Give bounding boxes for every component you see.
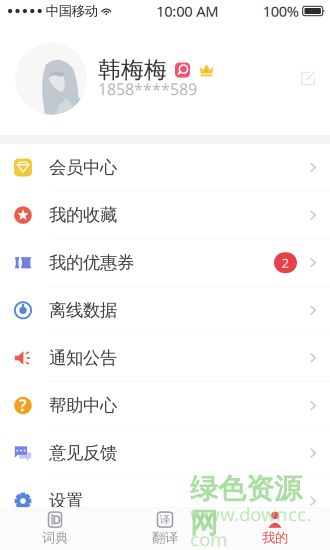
button[interactable]: 我的优惠券 xyxy=(0,239,330,287)
button[interactable]: 译 xyxy=(110,507,220,550)
button[interactable]: ? xyxy=(0,382,330,430)
button[interactable]: D xyxy=(0,507,110,550)
staticText: 1858****589 xyxy=(98,78,197,100)
button[interactable]: Edit profile xyxy=(291,61,325,95)
staticText: 译 xyxy=(159,513,170,526)
button[interactable]: 意见反馈 xyxy=(0,430,330,477)
staticText: 设置 xyxy=(49,490,83,512)
staticText: 通知公告 xyxy=(49,347,117,369)
staticText: 我的收藏 xyxy=(49,204,117,226)
button[interactable]: 设置 xyxy=(0,477,330,525)
staticText: 10:00 AM xyxy=(156,1,218,21)
staticText: 会员中心 xyxy=(49,157,117,178)
staticText: 100% xyxy=(263,1,299,21)
staticText: 词典 xyxy=(42,530,68,546)
staticText: 翻译 xyxy=(152,530,178,546)
staticText: 帮助中心 xyxy=(49,395,117,416)
button[interactable]: 通知公告 xyxy=(0,334,330,382)
staticText: 中国移动 xyxy=(46,3,98,19)
staticText: 绿色资源网 xyxy=(190,472,302,540)
button[interactable]: 我的 xyxy=(220,507,330,550)
staticText: 我的优惠券 xyxy=(49,252,134,273)
staticText: 离线数据 xyxy=(49,300,117,321)
staticText: 我的 xyxy=(262,530,288,546)
button[interactable]: 会员中心 xyxy=(0,144,330,192)
staticText: ? xyxy=(19,394,27,416)
button[interactable]: 离线数据 xyxy=(0,287,330,334)
staticText: 意见反馈 xyxy=(49,442,117,464)
staticText: D xyxy=(52,512,61,527)
button[interactable]: 我的收藏 xyxy=(0,192,330,239)
staticText: 韩梅梅 xyxy=(98,56,167,84)
staticText: 2 xyxy=(281,254,289,271)
staticText: www.downcc.com xyxy=(190,502,311,550)
